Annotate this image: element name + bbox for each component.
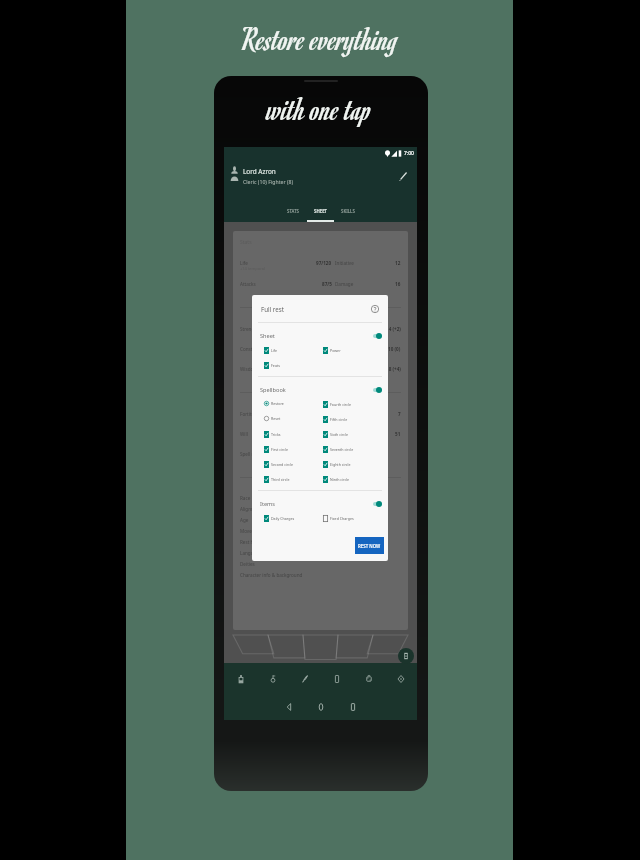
staticText: Restore everything bbox=[126, 18, 513, 58]
staticText: Full rest bbox=[261, 305, 284, 313]
button[interactable]: Toggle bbox=[368, 498, 382, 510]
button[interactable]: Daily Charges bbox=[264, 515, 323, 522]
button[interactable]: Potions bbox=[224, 663, 257, 694]
button[interactable]: Sixth circle bbox=[323, 431, 382, 438]
staticText: Alignment bbox=[240, 506, 263, 512]
staticText: 14 (+2) bbox=[386, 326, 401, 332]
staticText: Power bbox=[330, 348, 341, 353]
staticText: Age bbox=[240, 517, 249, 523]
staticText: REST NOW bbox=[358, 543, 381, 549]
staticText: Sixth circle bbox=[330, 432, 348, 437]
staticText: STATS bbox=[287, 208, 300, 214]
button[interactable]: Edit bbox=[394, 167, 412, 185]
staticText: Strength bbox=[240, 326, 259, 332]
staticText: 97/120 bbox=[316, 260, 332, 266]
button[interactable]: Back bbox=[278, 696, 300, 718]
button[interactable]: Life bbox=[264, 347, 323, 354]
staticText: Items bbox=[260, 500, 275, 508]
staticText: SKILLS bbox=[341, 208, 355, 214]
staticText: Fixed Charges bbox=[330, 516, 354, 521]
staticText: Daily Charges bbox=[271, 516, 295, 521]
staticText: 7 bbox=[398, 411, 401, 417]
staticText: Fortitude bbox=[240, 411, 260, 417]
staticText: Deities bbox=[240, 561, 255, 567]
button[interactable]: Seventh circle bbox=[323, 446, 382, 453]
button[interactable]: SKILLS bbox=[334, 204, 361, 222]
button[interactable]: Spells bbox=[289, 663, 321, 694]
staticText: Lord Azron bbox=[243, 167, 276, 176]
staticText: Fifth circle bbox=[330, 417, 348, 422]
staticText: Intelligence bbox=[335, 346, 361, 352]
button[interactable]: Third circle bbox=[264, 476, 323, 483]
staticText: 16 bbox=[395, 281, 401, 287]
staticText: 7:00 bbox=[404, 150, 414, 157]
staticText: Ninth circle bbox=[330, 477, 350, 482]
staticText: with one tap bbox=[126, 88, 513, 128]
staticText: Character info & background bbox=[240, 572, 303, 578]
button[interactable]: Restore bbox=[264, 401, 323, 406]
staticText: Movement speed bbox=[240, 528, 278, 534]
button[interactable]: Toggle bbox=[368, 330, 382, 342]
button[interactable]: Weapons bbox=[257, 663, 289, 694]
staticText: Restore bbox=[271, 401, 284, 406]
staticText: First circle bbox=[271, 447, 288, 452]
button[interactable]: Notes bbox=[321, 663, 353, 694]
button[interactable]: Reset bbox=[264, 416, 323, 421]
staticText: Life bbox=[271, 348, 278, 353]
button[interactable]: Settings bbox=[385, 663, 417, 694]
button[interactable]: Fourth circle bbox=[323, 401, 382, 408]
staticText: Cleric (10) Fighter (8) bbox=[243, 178, 294, 185]
button[interactable]: Toggle bbox=[368, 384, 382, 396]
staticText: Wisdom bbox=[240, 366, 258, 372]
staticText: Seventh circle bbox=[330, 447, 354, 452]
button[interactable]: Help bbox=[369, 303, 381, 315]
button[interactable]: Tricks bbox=[264, 431, 323, 438]
staticText: Tricks bbox=[271, 432, 281, 437]
staticText: Languages bbox=[240, 550, 264, 556]
button[interactable]: Feats bbox=[264, 362, 323, 369]
staticText: Second circle bbox=[271, 462, 294, 467]
staticText: Spell resistance bbox=[240, 451, 274, 457]
staticText: SHEET bbox=[314, 208, 328, 214]
button[interactable]: Power bbox=[323, 347, 382, 354]
button[interactable]: Eighth circle bbox=[323, 461, 382, 468]
staticText: Fourth circle bbox=[330, 402, 351, 407]
button[interactable]: Fifth circle bbox=[323, 416, 382, 423]
staticText: 87/5 bbox=[322, 281, 332, 287]
staticText: Third circle bbox=[271, 477, 290, 482]
button[interactable]: Rest bbox=[398, 648, 414, 664]
button[interactable]: Dice bbox=[353, 663, 385, 694]
staticText: Attacks bbox=[240, 281, 256, 287]
button[interactable]: STATS bbox=[280, 204, 307, 222]
staticText: 16 (+3) bbox=[317, 346, 332, 352]
button[interactable]: Fixed Charges bbox=[323, 515, 382, 522]
button[interactable]: Recents bbox=[342, 696, 364, 718]
staticText: Life bbox=[240, 260, 248, 266]
staticText: Damage bbox=[335, 281, 354, 287]
button[interactable]: Home bbox=[310, 696, 332, 718]
staticText: Rest hours bbox=[240, 539, 264, 545]
staticText: 12 bbox=[395, 260, 401, 266]
staticText: Constitution bbox=[240, 346, 267, 352]
staticText: Spellbook bbox=[260, 386, 286, 394]
staticText: Eighth circle bbox=[330, 462, 351, 467]
staticText: Initiative bbox=[335, 260, 354, 266]
staticText: Race bbox=[240, 495, 251, 501]
button[interactable]: Second circle bbox=[264, 461, 323, 468]
staticText: Will bbox=[240, 431, 248, 437]
button[interactable]: SHEET bbox=[307, 204, 334, 222]
staticText: 18 (+4) bbox=[386, 366, 401, 372]
staticText: Feats bbox=[271, 363, 280, 368]
button[interactable]: Ninth circle bbox=[323, 476, 382, 483]
button[interactable]: First circle bbox=[264, 446, 323, 453]
staticText: 10 (0) bbox=[388, 346, 401, 352]
button[interactable]: REST NOW bbox=[355, 537, 384, 554]
staticText: 51 bbox=[395, 431, 401, 437]
staticText: Sheet bbox=[260, 332, 275, 340]
